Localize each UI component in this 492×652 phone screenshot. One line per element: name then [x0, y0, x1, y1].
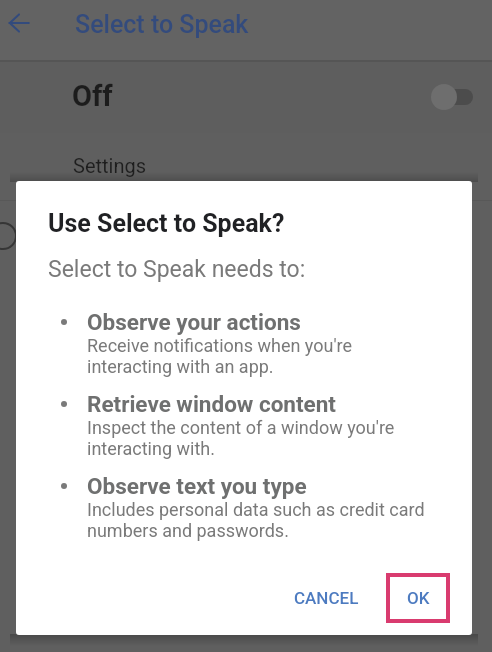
- staticText: OK: [407, 588, 430, 608]
- staticText: Select to Speak: [75, 10, 249, 39]
- staticText: Observe text you type: [87, 473, 307, 499]
- staticText: Inspect the content of a window you're i…: [87, 417, 395, 459]
- staticText: Observe your actions: [87, 309, 301, 335]
- button[interactable]: CANCEL: [278, 577, 375, 619]
- staticText: Select to Speak needs to:: [48, 256, 306, 283]
- staticText: Retrieve window content: [87, 391, 336, 417]
- staticText: Settings: [73, 154, 147, 177]
- staticText: Includes personal data such as credit ca…: [87, 499, 425, 541]
- button[interactable]: Navigate up: [0, 0, 43, 47]
- staticText: Receive notifications when you're intera…: [87, 335, 353, 377]
- button[interactable]: OK: [386, 577, 450, 619]
- staticText: CANCEL: [294, 588, 359, 608]
- button[interactable]: Off: [0, 62, 492, 133]
- staticText: Off: [72, 79, 113, 113]
- staticText: Use Select to Speak?: [48, 209, 285, 238]
